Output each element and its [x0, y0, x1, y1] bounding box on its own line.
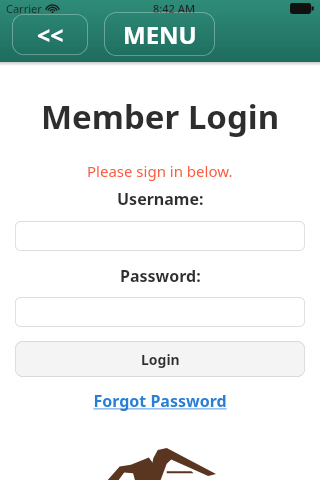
button[interactable]: Back — [12, 14, 88, 55]
button[interactable]: Login — [15, 341, 305, 377]
staticText: Please sign in below. — [87, 161, 233, 181]
staticText: Member Login — [41, 94, 280, 139]
button[interactable] — [15, 297, 305, 327]
staticText: Username: — [117, 188, 204, 210]
staticText: << — [37, 19, 64, 50]
button[interactable]: Forgot Password — [87, 388, 233, 414]
staticText: Login — [141, 350, 180, 369]
staticText: 8:42 AM — [153, 1, 196, 16]
staticText: Password: — [120, 265, 201, 287]
button[interactable] — [15, 221, 305, 251]
staticText: MENU — [123, 18, 197, 51]
staticText: Carrier — [6, 1, 42, 16]
button[interactable]: MENU — [104, 12, 215, 56]
